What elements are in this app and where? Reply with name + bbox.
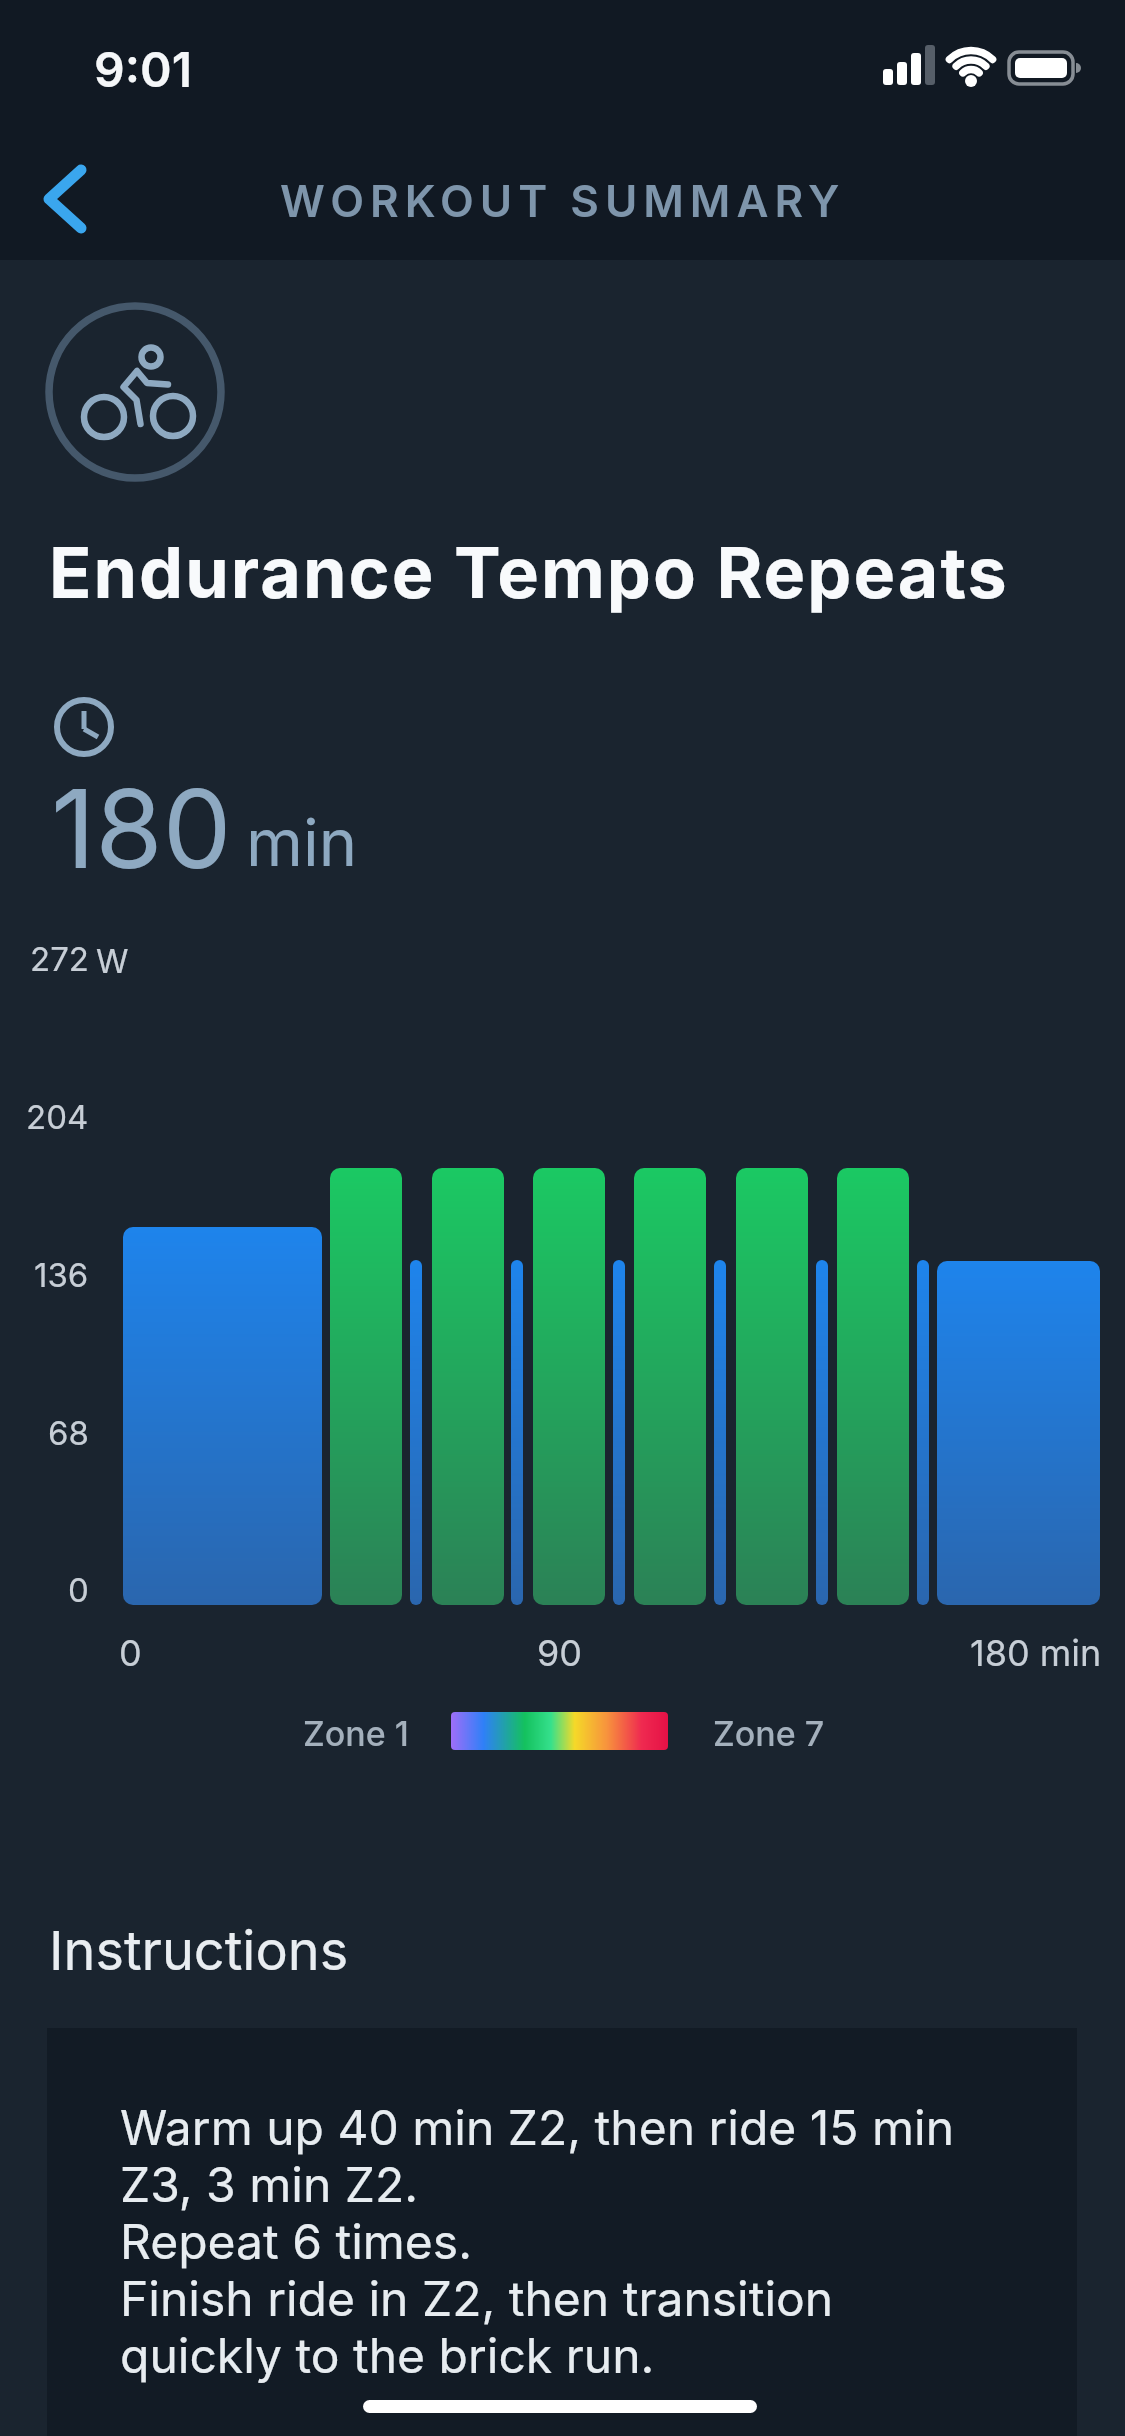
staticText: 0 [68, 1570, 89, 1610]
staticText: 68 [48, 1413, 89, 1453]
staticText: 204 [26, 1097, 89, 1137]
staticText: W [96, 941, 129, 981]
staticText: Zone 7 [713, 1713, 825, 1754]
staticText: Instructions [49, 1918, 349, 1983]
staticText: 180 [51, 762, 232, 894]
staticText: 90 [537, 1631, 583, 1675]
staticText: 9:01 [94, 40, 192, 98]
staticText: Zone 1 [303, 1713, 409, 1754]
staticText: 0 [119, 1631, 142, 1675]
staticText: Warm up 40 min Z2, then ride 15 min Z3, … [120, 2098, 955, 2384]
staticText: min [246, 803, 358, 882]
staticText: 180 min [970, 1631, 1102, 1675]
staticText: Endurance Tempo Repeats [49, 530, 1009, 615]
button[interactable] [20, 150, 110, 250]
staticText: 136 [34, 1255, 89, 1295]
staticText: WORKOUT SUMMARY [280, 174, 846, 227]
staticText: 272 [30, 939, 89, 979]
